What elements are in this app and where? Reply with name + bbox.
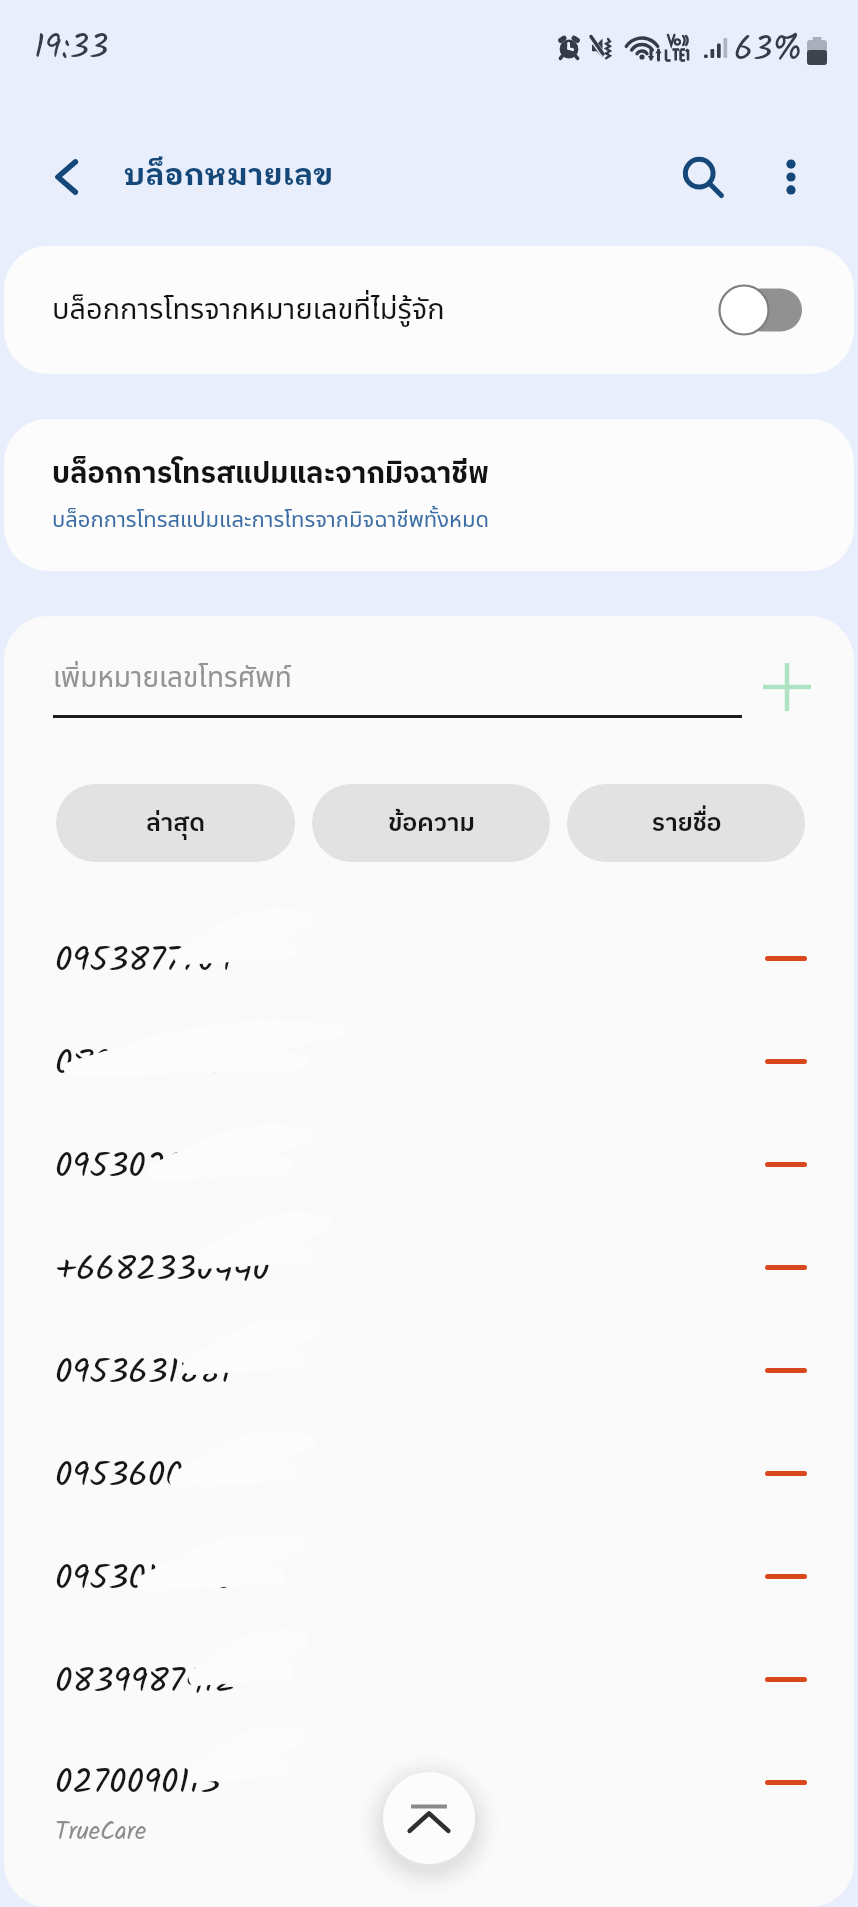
staticText: บล็อกการโทรจากหมายเลขที่ไม่รู้จัก [52, 288, 445, 332]
staticText: +6682330440 [55, 1243, 270, 1299]
staticText: ล่าสุด [146, 803, 205, 844]
button[interactable]: Remove number [758, 930, 814, 986]
staticText: 0953877709 [55, 934, 233, 990]
button[interactable]: Back [34, 144, 100, 210]
staticText: 0892661511 [55, 1037, 222, 1093]
button[interactable]: 0892661511 [4, 1009, 854, 1112]
button[interactable]: More options [758, 144, 824, 210]
staticText: 0953631881 [55, 1346, 232, 1402]
staticText: 19:33 [34, 22, 109, 76]
button[interactable]: 0953022465 [4, 1112, 854, 1215]
button[interactable]: Scroll to top [383, 1772, 475, 1864]
button[interactable]: +6682330440 [4, 1215, 854, 1318]
button[interactable]: Search [670, 144, 736, 210]
staticText: 0270090113 [55, 1756, 221, 1812]
button[interactable]: บล็อกการโทรจากหมายเลขที่ไม่รู้จัก [4, 246, 854, 374]
button[interactable]: Remove number [758, 1548, 814, 1604]
staticText: 0953012355 [55, 1552, 235, 1608]
staticText: บล็อกการโทรสแปมและจากมิจฉาชีพ [52, 451, 490, 499]
staticText: 63% [734, 24, 803, 78]
button[interactable]: Add number [742, 642, 832, 732]
button[interactable]: Remove number [758, 1136, 814, 1192]
button[interactable]: 0953600412 [4, 1421, 854, 1524]
staticText: เพิ่มหมายเลขโทรศัพท์ [53, 657, 292, 699]
staticText: บล็อกหมายเลข [124, 152, 334, 202]
button[interactable]: รายชื่อ [567, 784, 805, 862]
button[interactable]: 0953012355 [4, 1524, 854, 1627]
button[interactable]: Remove number [758, 1239, 814, 1295]
staticText: 0839987412 [55, 1655, 236, 1711]
button[interactable] [710, 282, 802, 338]
button[interactable]: Remove number [758, 1033, 814, 1089]
button[interactable]: ล่าสุด [56, 784, 295, 862]
button[interactable]: Remove number [758, 1651, 814, 1707]
staticText: บล็อกการโทรสแปมและการโทรจากมิจฉาชีพทั้งห… [52, 504, 490, 537]
button[interactable]: บล็อกการโทรสแปมและจากมิจฉาชีพ [4, 419, 854, 571]
staticText: 0953022465 [55, 1140, 245, 1196]
button[interactable]: Remove number [758, 1445, 814, 1501]
button[interactable]: 0953631881 [4, 1318, 854, 1421]
button[interactable]: 0839987412 [4, 1627, 854, 1730]
button[interactable]: 0270090113 [4, 1730, 854, 1833]
button[interactable]: 0953877709 [4, 906, 854, 1009]
staticText: ข้อความ [388, 803, 475, 844]
staticText: 0953600412 [55, 1449, 234, 1505]
staticText: รายชื่อ [651, 803, 722, 844]
button[interactable]: ข้อความ [312, 784, 550, 862]
button[interactable]: Remove number [758, 1342, 814, 1398]
staticText: TrueCare [55, 1812, 147, 1852]
button[interactable]: Remove number [758, 1754, 814, 1810]
